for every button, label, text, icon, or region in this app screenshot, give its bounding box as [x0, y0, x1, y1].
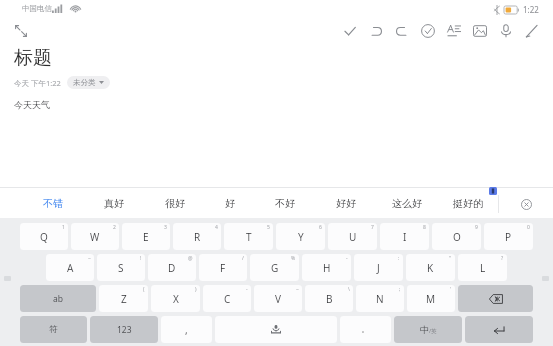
staticText: 未分类	[73, 78, 96, 87]
staticText: 0	[527, 224, 530, 231]
button[interactable]: C	[203, 285, 251, 312]
button[interactable]: 不错	[22, 189, 83, 218]
button[interactable]: L	[458, 254, 507, 281]
button[interactable]: R	[173, 223, 221, 250]
staticText: Z	[121, 292, 127, 306]
staticText: 今天 下午1:22	[14, 78, 61, 88]
button[interactable]: A	[46, 254, 94, 281]
button[interactable]: ,	[161, 316, 212, 343]
staticText: T	[246, 230, 252, 244]
staticText: !	[140, 255, 142, 262]
button[interactable]: F	[199, 254, 247, 281]
staticText: U	[349, 230, 357, 244]
button[interactable]: 真好	[83, 189, 144, 218]
button[interactable]: Z	[99, 285, 148, 312]
button[interactable]: H	[302, 254, 351, 281]
staticText: -	[346, 255, 348, 262]
staticText: "	[449, 255, 452, 262]
button[interactable]: 很好	[144, 189, 205, 218]
staticText: 好好	[336, 197, 356, 210]
staticText: A	[67, 261, 74, 275]
staticText: 4	[215, 224, 218, 231]
button[interactable]: ab	[20, 285, 96, 312]
button[interactable]: I	[380, 223, 429, 250]
button[interactable]: Draw	[519, 18, 545, 44]
button[interactable]: 123	[90, 316, 158, 343]
staticText: @	[188, 255, 193, 262]
button[interactable]: P	[484, 223, 533, 250]
staticText: 3	[164, 224, 167, 231]
button[interactable]: 挺好的	[437, 189, 498, 218]
staticText: 标题	[14, 46, 52, 70]
staticText: X	[173, 292, 179, 306]
button[interactable]: K	[406, 254, 455, 281]
staticText: R	[194, 230, 201, 244]
button[interactable]: B	[305, 285, 353, 312]
staticText: %	[291, 255, 296, 262]
staticText: P	[505, 230, 512, 244]
button[interactable]: O	[432, 223, 481, 250]
button[interactable]: Voice input	[493, 18, 519, 44]
button[interactable]: Q	[20, 223, 68, 250]
staticText: -	[246, 286, 248, 293]
staticText: ab	[53, 293, 63, 305]
staticText: 真好	[104, 197, 124, 210]
button[interactable]: 未分类	[67, 76, 110, 89]
button[interactable]: E	[122, 223, 170, 250]
button[interactable]: N	[356, 285, 404, 312]
staticText: /英	[429, 327, 437, 335]
button[interactable]: Space	[215, 316, 337, 343]
button[interactable]: G	[250, 254, 299, 281]
staticText: 好	[225, 197, 235, 210]
staticText: Y	[298, 230, 304, 244]
button[interactable]: Redo	[389, 18, 415, 44]
staticText: 1:22	[523, 4, 539, 15]
staticText: V	[275, 292, 281, 306]
button[interactable]: 好好	[315, 189, 376, 218]
button[interactable]: Collapse	[12, 22, 30, 40]
staticText: ~	[88, 255, 91, 262]
button[interactable]: 好	[205, 189, 254, 218]
staticText: (	[143, 286, 145, 293]
button[interactable]: M	[407, 285, 455, 312]
staticText: 很好	[165, 197, 185, 210]
button[interactable]: W	[71, 223, 119, 250]
button[interactable]: 这么好	[376, 189, 437, 218]
button[interactable]: S	[97, 254, 145, 281]
staticText: ?	[501, 255, 504, 262]
button[interactable]: U	[328, 223, 377, 250]
button[interactable]: 不好	[254, 189, 315, 218]
staticText: 2	[113, 224, 116, 231]
staticText: 中国电信	[22, 4, 52, 13]
staticText: 9	[475, 224, 478, 231]
button[interactable]: Backspace	[458, 285, 533, 312]
staticText: J	[377, 261, 380, 275]
button[interactable]: Undo	[363, 18, 389, 44]
staticText: 5	[267, 224, 270, 231]
button[interactable]: Close suggestions	[515, 193, 537, 215]
button[interactable]: Checklist	[415, 18, 441, 44]
button[interactable]: Text format	[441, 18, 467, 44]
staticText: O	[453, 230, 461, 244]
button[interactable]: Done	[337, 18, 363, 44]
button[interactable]: X	[151, 285, 200, 312]
button[interactable]: V	[254, 285, 302, 312]
staticText: ,	[185, 323, 188, 337]
staticText: W	[90, 230, 100, 244]
button[interactable]: 符	[20, 316, 87, 343]
staticText: C	[224, 292, 231, 306]
staticText: 7	[371, 224, 374, 231]
staticText: S	[118, 261, 124, 275]
button[interactable]: J	[354, 254, 403, 281]
staticText: I	[403, 230, 407, 244]
staticText: H	[323, 261, 331, 275]
button[interactable]: D	[148, 254, 196, 281]
button[interactable]: 中	[394, 316, 462, 343]
button[interactable]: Y	[276, 223, 325, 250]
staticText: \	[348, 286, 350, 293]
button[interactable]: Insert image	[467, 18, 493, 44]
button[interactable]: Enter	[465, 316, 533, 343]
staticText: 符	[49, 324, 58, 335]
button[interactable]: T	[224, 223, 273, 250]
